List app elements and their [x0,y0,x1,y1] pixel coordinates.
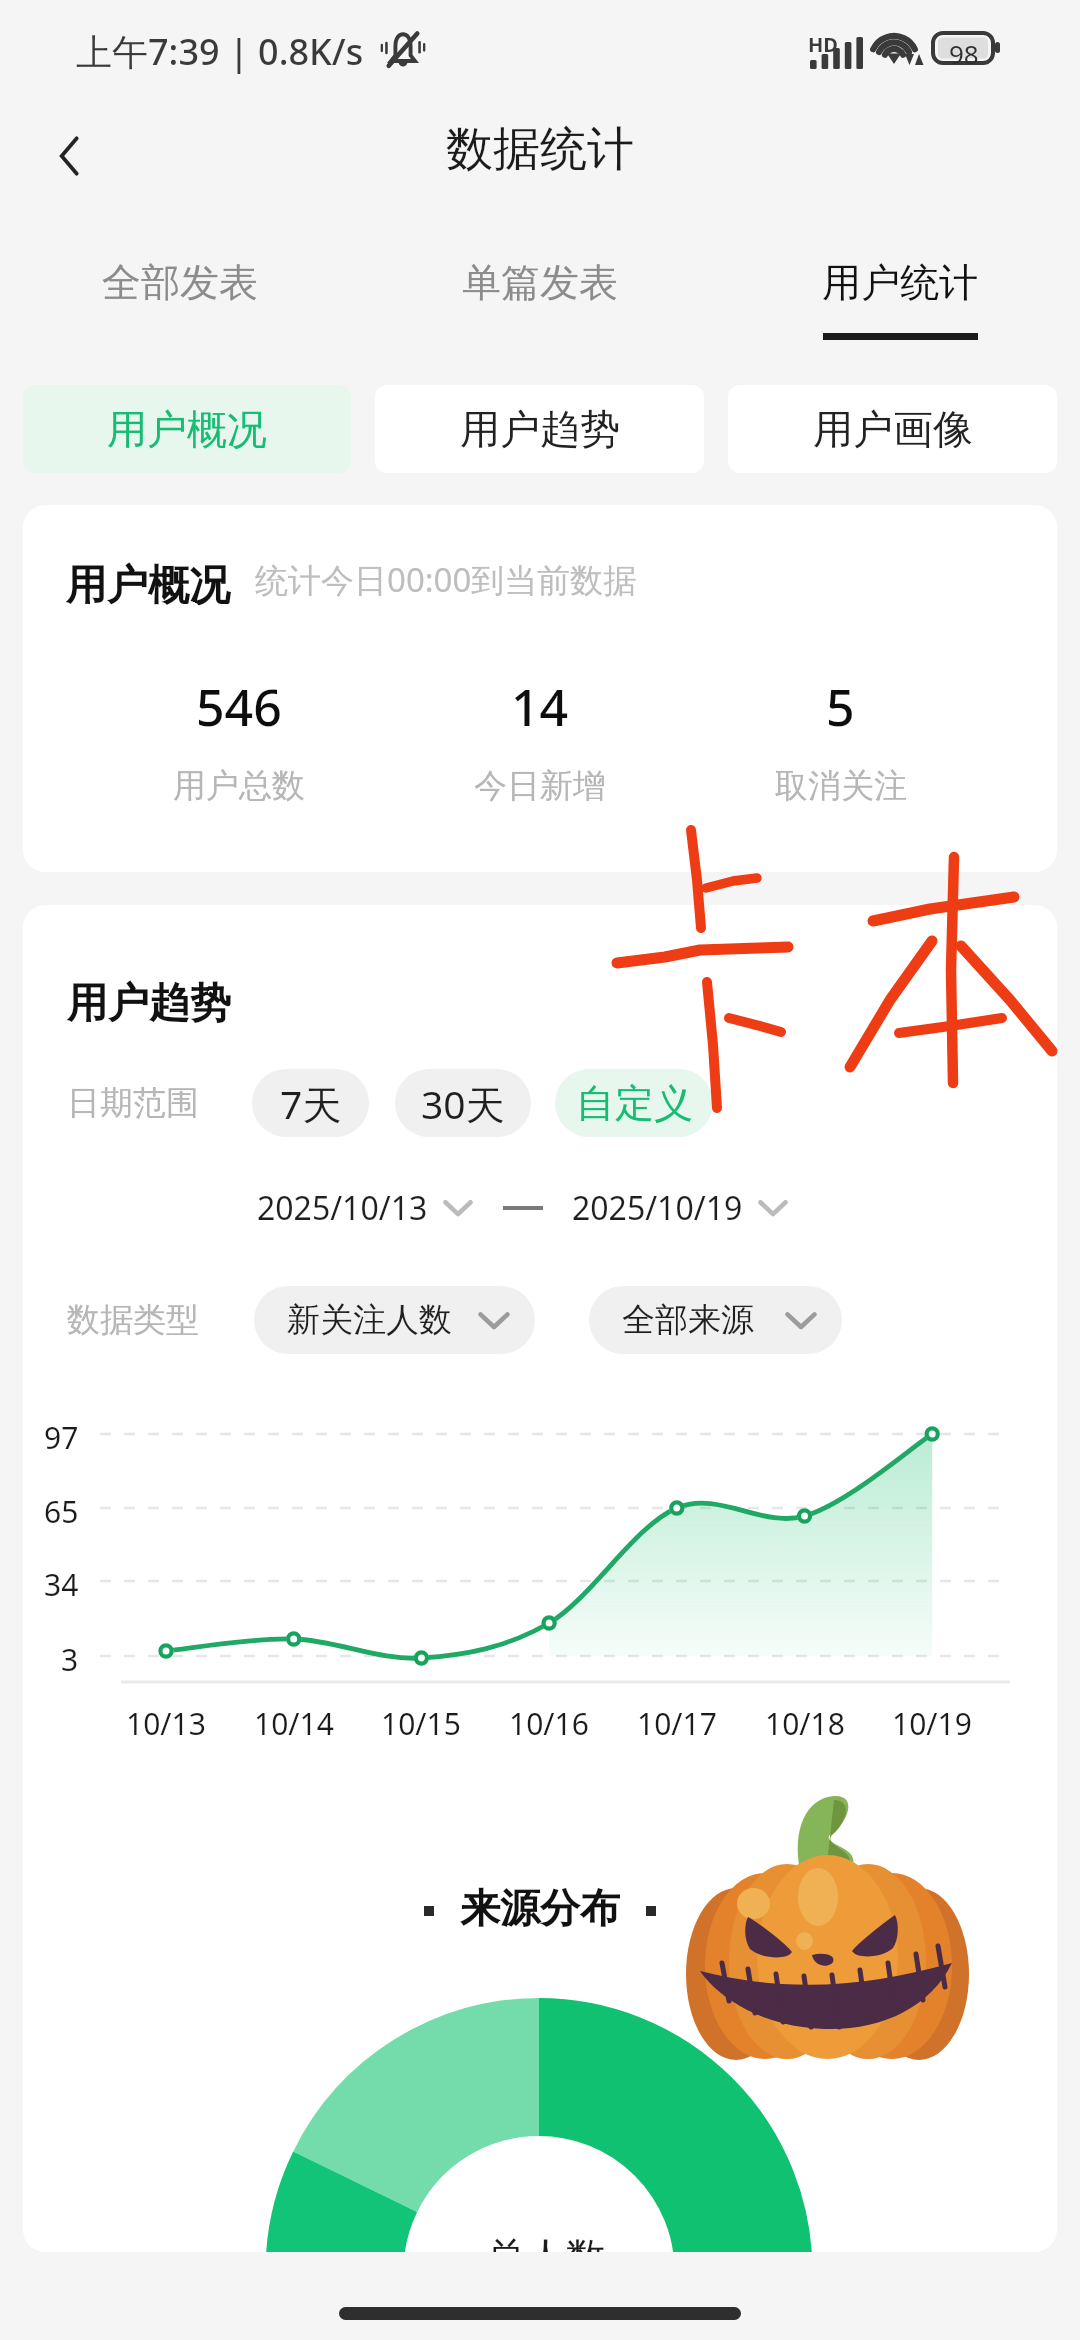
staticText: 30天 [421,1077,505,1130]
button[interactable]: 全部发表 [0,258,360,348]
staticText: 日期范围 [67,1082,199,1124]
staticText: 5 [826,673,855,741]
staticText: 7天 [280,1077,342,1130]
staticText: 10/17 [637,1703,717,1744]
staticText: 用户趋势 [67,978,231,1030]
button[interactable]: 全部来源 [589,1286,842,1354]
staticText: 34 [44,1564,79,1605]
staticText: 97 [44,1417,79,1458]
staticText: 用户概况 [66,560,230,612]
staticText: 65 [44,1491,79,1532]
staticText: 3 [61,1639,79,1680]
staticText: 10/16 [509,1703,589,1744]
staticText: HD [808,31,838,58]
button[interactable]: Back [26,112,114,200]
button[interactable]: 用户趋势 [375,385,704,473]
staticText: 来源分布 [460,1883,620,1933]
button[interactable]: 546 [89,673,389,807]
staticText: 新关注人数 [287,1299,452,1341]
staticText: 98 [949,36,979,68]
staticText: 10/14 [254,1703,334,1744]
staticText: 单篇发表 [462,258,618,307]
button[interactable]: 用户画像 [728,385,1057,473]
button[interactable]: 2025/10/19 [572,1186,787,1230]
staticText: 14 [511,673,569,741]
staticText: 546 [196,673,282,741]
staticText: 10/13 [126,1703,206,1744]
staticText: 用户概况 [107,404,267,454]
button[interactable]: 30天 [395,1069,531,1137]
button[interactable]: 2025/10/13 [257,1186,472,1230]
button[interactable]: 新关注人数 [254,1286,535,1354]
staticText: 全部发表 [102,258,258,307]
staticText: 上午7:39 | 0.8K/s [76,27,364,76]
staticText: 全部来源 [622,1299,754,1341]
staticText: 总人数 [486,2232,606,2252]
staticText: 统计今日00:00到当前数据 [255,557,637,602]
staticText: 2025/10/19 [572,1186,743,1230]
staticText: 用户总数 [173,765,305,807]
staticText: 用户画像 [813,404,973,454]
button[interactable]: 5 [690,673,991,807]
staticText: 10/18 [765,1703,845,1744]
button[interactable]: 用户概况 [23,385,351,473]
staticText: 10/19 [892,1703,972,1744]
staticText: 取消关注 [775,765,907,807]
staticText: 数据统计 [446,120,634,179]
button[interactable]: 14 [389,673,690,807]
staticText: 自定义 [576,1079,693,1128]
staticText: 2025/10/13 [257,1186,428,1230]
button[interactable]: 用户统计 [720,258,1080,348]
button[interactable]: 单篇发表 [360,258,720,348]
staticText: 用户趋势 [460,404,620,454]
button[interactable]: 自定义 [555,1069,713,1137]
staticText: 数据类型 [67,1299,199,1341]
button[interactable]: 7天 [252,1069,369,1137]
staticText: 用户统计 [822,258,978,307]
staticText: 今日新增 [474,765,606,807]
staticText: 10/15 [381,1703,461,1744]
